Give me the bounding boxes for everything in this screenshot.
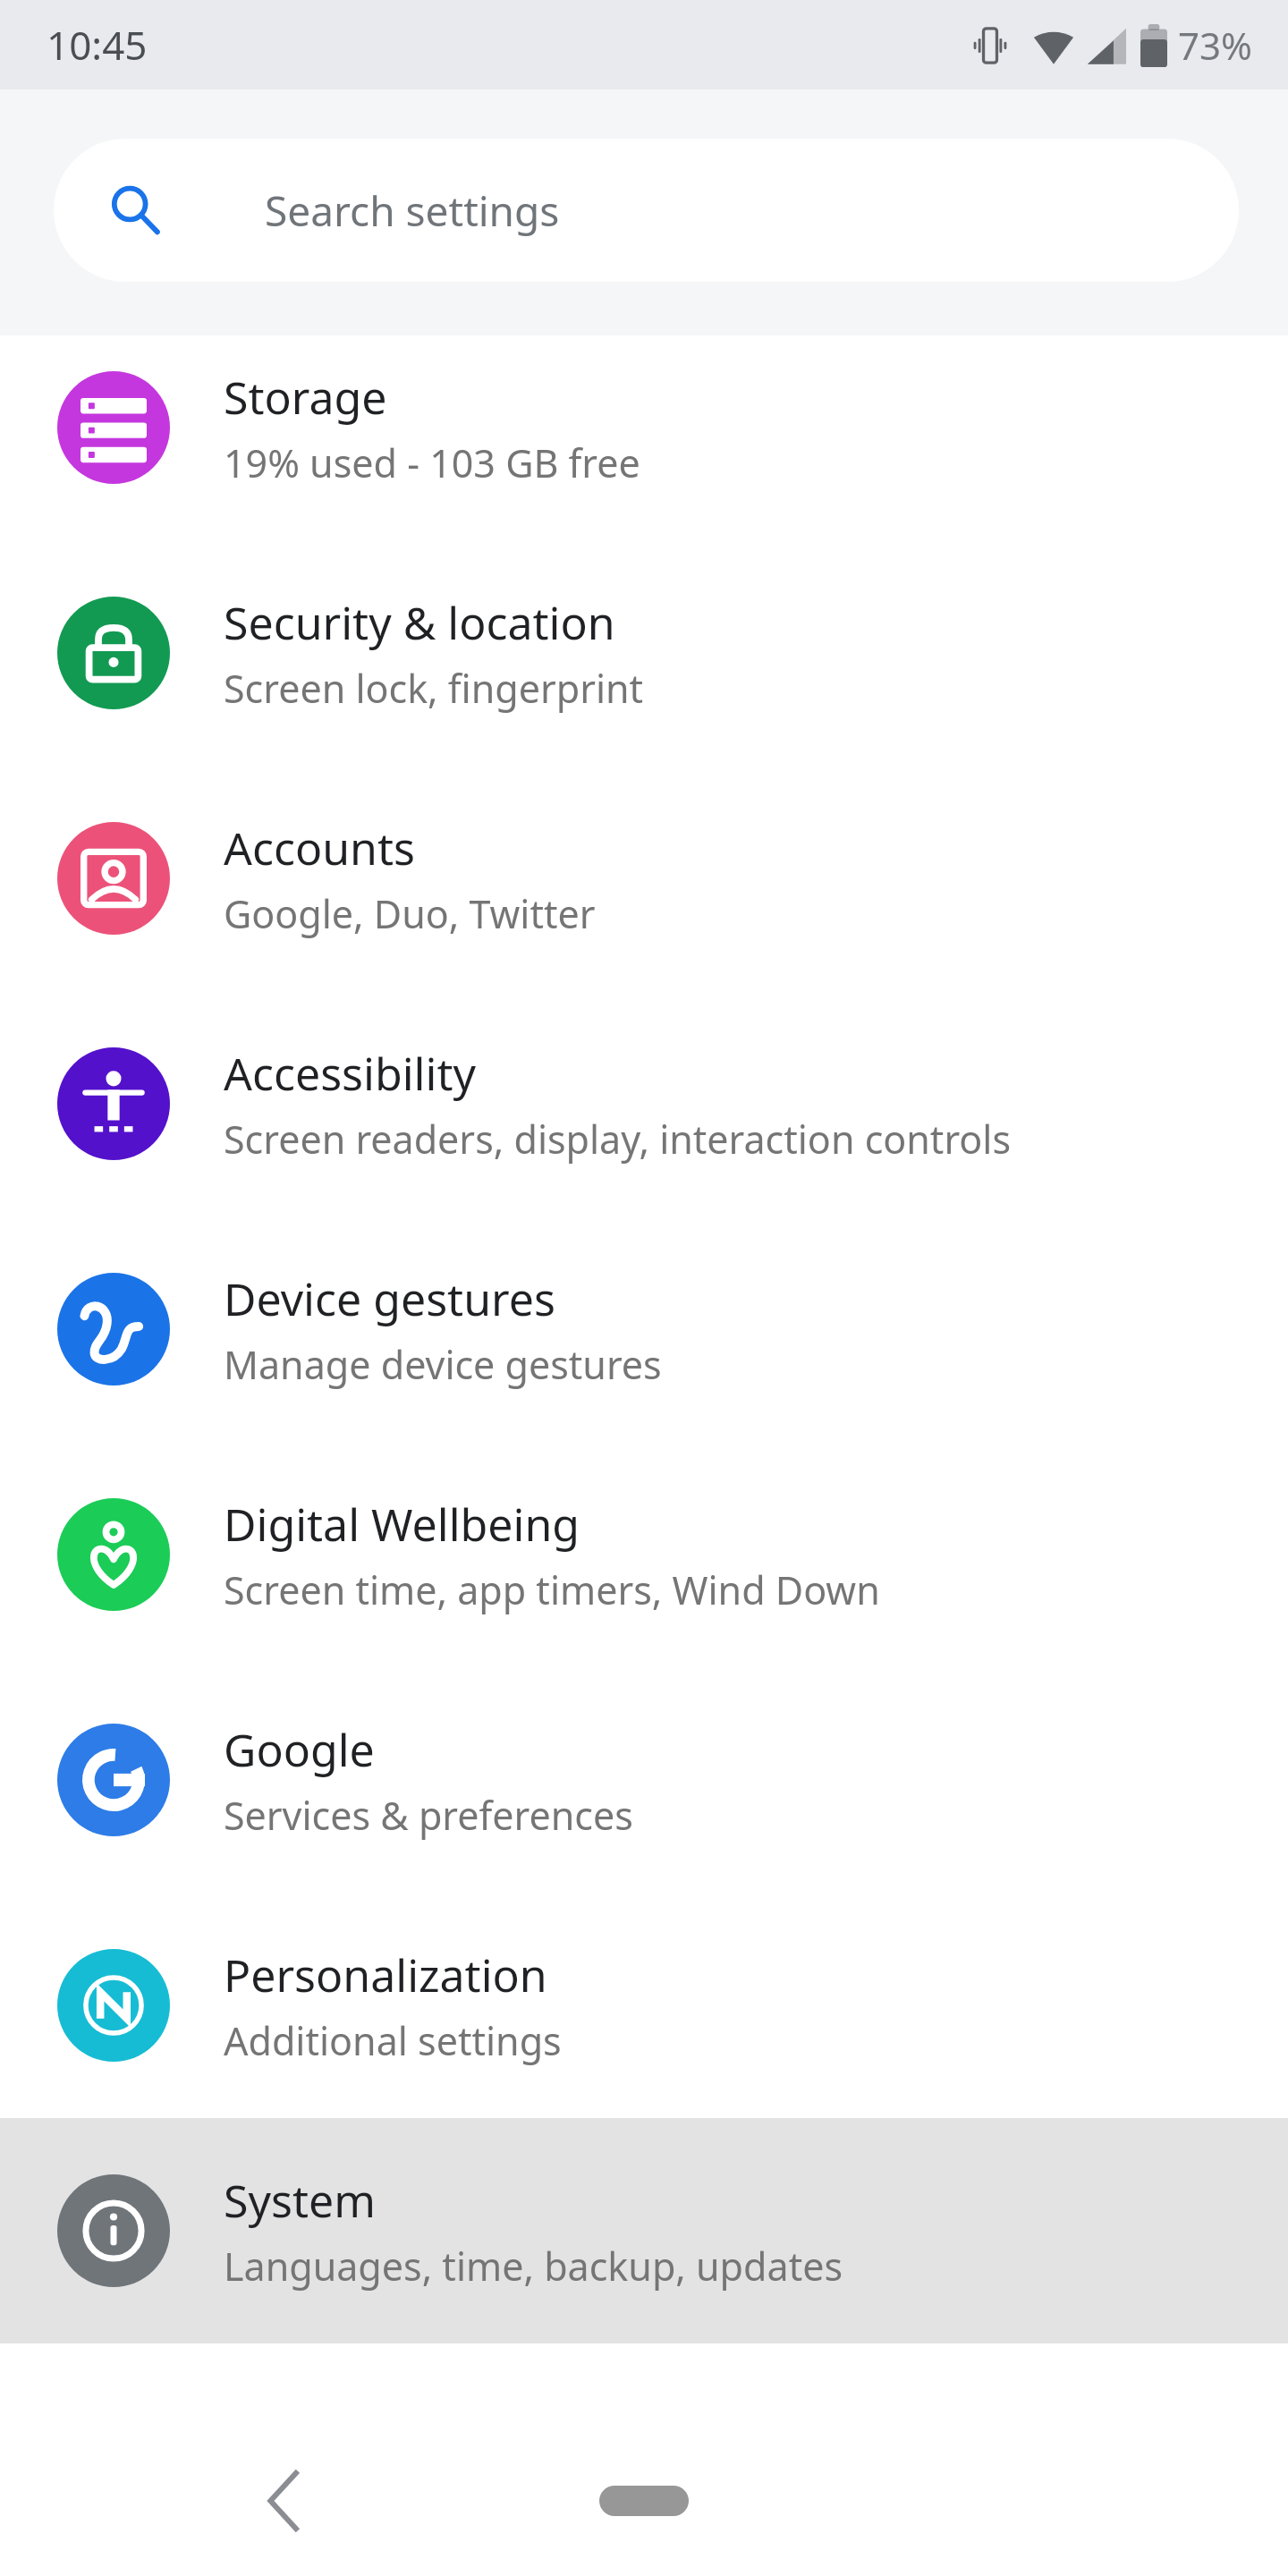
staticText: Google, Duo, Twitter [224,887,596,940]
button[interactable]: Accounts [0,766,1288,991]
staticText: Device gestures [224,1268,555,1329]
button[interactable]: Home [559,2447,729,2555]
button[interactable]: System [0,2118,1288,2343]
staticText: Screen time, app timers, Wind Down [224,1563,880,1616]
staticText: Services & preferences [224,1789,633,1842]
staticText: 10:45 [47,18,148,72]
staticText: 19% used - 103 GB free [224,436,640,489]
button[interactable]: Search settings [54,139,1239,282]
button[interactable]: Storage [0,315,1288,540]
staticText: Screen readers, display, interaction con… [224,1113,1011,1165]
staticText: Volume, vibration, Do Not Disturb [224,195,834,248]
button[interactable]: Personalization [0,1893,1288,2118]
staticText: Personalization [224,1945,547,2005]
staticText: Storage [224,367,387,428]
staticText: System [224,2170,376,2231]
staticText: Security & location [224,592,615,653]
button[interactable]: Security & location [0,540,1288,766]
button[interactable]: Accessibility [0,991,1288,1216]
button[interactable]: Back [231,2447,338,2555]
button[interactable]: Digital Wellbeing [0,1442,1288,1667]
staticText: Search settings [265,182,560,239]
staticText: Screen lock, fingerprint [224,662,644,715]
staticText: Manage device gestures [224,1338,662,1391]
staticText: Accessibility [224,1043,476,1104]
staticText: Languages, time, backup, updates [224,2240,843,2292]
staticText: 73% [1178,20,1252,71]
staticText: Digital Wellbeing [224,1494,580,1555]
staticText: Accounts [224,818,415,878]
staticText: Google [224,1719,375,1780]
button[interactable]: Device gestures [0,1216,1288,1442]
staticText: Additional settings [224,2014,562,2067]
button[interactable]: Google [0,1667,1288,1893]
